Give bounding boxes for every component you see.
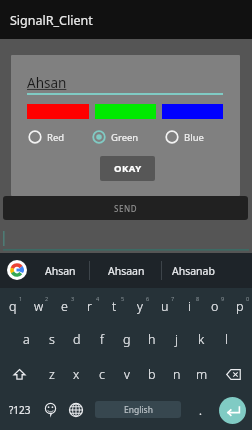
staticText: 6 — [146, 295, 150, 302]
staticText: m — [196, 366, 208, 383]
staticText: h — [148, 331, 156, 348]
button[interactable]: Green — [92, 126, 139, 148]
staticText: Green — [111, 131, 139, 144]
button[interactable]: SEND — [3, 196, 248, 220]
staticText: Ahsan — [27, 74, 67, 92]
staticText: y — [137, 298, 143, 315]
button[interactable]: 7 — [152, 288, 177, 322]
button[interactable]: g — [114, 322, 139, 357]
staticText: 8 — [196, 295, 200, 302]
staticText: s — [49, 331, 55, 348]
staticText: . — [199, 403, 202, 418]
button[interactable]: s — [39, 322, 64, 357]
staticText: 7 — [171, 295, 175, 302]
staticText: d — [73, 331, 81, 348]
staticText: 0 — [246, 295, 250, 302]
staticText: English — [124, 404, 153, 416]
staticText: q — [9, 298, 17, 315]
button[interactable]: b — [139, 357, 164, 392]
button[interactable]: Ahsanab — [163, 253, 224, 288]
staticText: a — [23, 331, 30, 348]
button[interactable]: Ahsaan — [91, 253, 161, 288]
staticText: Ahsaan — [108, 264, 145, 278]
button[interactable]: Change language — [64, 392, 88, 430]
staticText: f — [100, 331, 104, 348]
button[interactable]: h — [139, 322, 164, 357]
staticText: j — [175, 331, 178, 348]
staticText: r — [87, 298, 92, 315]
staticText: w — [34, 298, 44, 315]
staticText: t — [112, 298, 117, 315]
button[interactable]: Red — [28, 126, 65, 148]
staticText: Red — [47, 131, 65, 144]
button[interactable]: v — [114, 357, 139, 392]
button[interactable]: 3 — [52, 288, 77, 322]
button[interactable]: 2 — [26, 288, 52, 322]
staticText: Ahsanab — [172, 264, 215, 278]
staticText: g — [123, 331, 131, 348]
staticText: 5 — [121, 295, 125, 302]
button[interactable]: 1 — [0, 288, 26, 322]
button[interactable]: f — [89, 322, 114, 357]
button[interactable]: 6 — [127, 288, 152, 322]
staticText: SEND — [114, 203, 138, 214]
button[interactable]: 0 — [227, 288, 252, 322]
staticText: o — [211, 298, 219, 315]
button[interactable]: j — [164, 322, 189, 357]
button[interactable]: 9 — [202, 288, 227, 322]
staticText: 3 — [71, 295, 75, 302]
staticText: e — [61, 298, 68, 315]
button[interactable]: z — [39, 357, 64, 392]
button[interactable]: 8 — [177, 288, 202, 322]
button[interactable]: OKAY — [100, 156, 155, 181]
button[interactable]: . — [185, 392, 215, 430]
staticText: OKAY — [114, 162, 142, 175]
staticText: c — [99, 366, 105, 383]
staticText: 9 — [221, 295, 225, 302]
button[interactable]: Blue — [165, 126, 204, 148]
button[interactable]: 4 — [77, 288, 102, 322]
staticText: 4 — [96, 295, 100, 302]
button[interactable]: Emoji — [38, 392, 62, 430]
staticText: u — [161, 298, 169, 315]
button[interactable]: Backspace — [214, 357, 252, 392]
staticText: v — [124, 366, 130, 383]
staticText: SignalR_Client — [10, 12, 93, 29]
button[interactable]: k — [189, 322, 214, 357]
button[interactable]: Shift — [0, 357, 39, 392]
button[interactable]: English — [95, 401, 181, 418]
staticText: n — [173, 366, 181, 383]
button[interactable]: ?123 — [0, 392, 40, 430]
staticText: Ahsan — [45, 264, 76, 278]
button[interactable]: c — [89, 357, 114, 392]
button[interactable]: x — [64, 357, 89, 392]
button[interactable]: d — [64, 322, 89, 357]
button[interactable]: Enter — [214, 392, 251, 430]
staticText: 2 — [45, 295, 49, 302]
staticText: b — [148, 366, 156, 383]
staticText: x — [73, 366, 80, 383]
staticText: l — [225, 331, 228, 348]
button[interactable]: 5 — [102, 288, 127, 322]
button[interactable]: Ahsan — [32, 253, 89, 288]
staticText: ?123 — [9, 403, 31, 417]
staticText: z — [49, 366, 55, 383]
staticText: k — [198, 331, 205, 348]
button[interactable]: l — [214, 322, 239, 357]
staticText: p — [236, 298, 244, 315]
button[interactable]: n — [164, 357, 189, 392]
staticText: Blue — [184, 131, 204, 144]
staticText: 1 — [19, 295, 23, 302]
staticText: i — [188, 298, 191, 315]
button[interactable]: a — [14, 322, 39, 357]
button[interactable]: m — [189, 357, 214, 392]
